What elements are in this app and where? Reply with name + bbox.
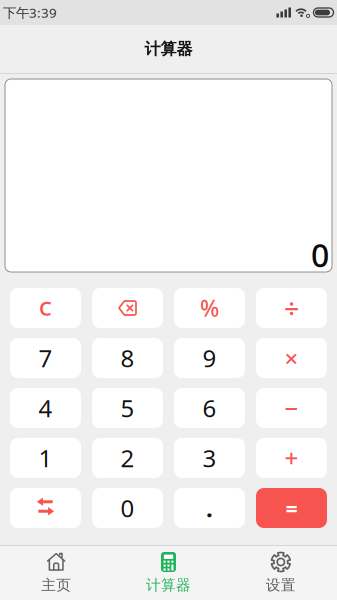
button[interactable]: Backspace xyxy=(92,288,163,328)
staticText: . xyxy=(206,492,213,524)
button[interactable]: . xyxy=(174,488,245,528)
button[interactable]: 5 xyxy=(92,388,163,428)
staticText: ÷ xyxy=(284,290,299,326)
staticText: 6 xyxy=(202,392,216,424)
staticText: 9 xyxy=(202,342,216,374)
staticText: − xyxy=(284,392,298,424)
staticText: 计算器 xyxy=(144,39,192,59)
staticText: + xyxy=(284,442,298,474)
button[interactable]: 8 xyxy=(92,338,163,378)
button[interactable]: = xyxy=(256,488,327,528)
staticText: 1 xyxy=(38,442,52,474)
staticText: 0 xyxy=(120,492,134,524)
staticText: 设置 xyxy=(266,576,296,594)
staticText: = xyxy=(285,494,297,522)
button[interactable]: 主页 xyxy=(0,546,112,600)
button[interactable]: 4 xyxy=(10,388,81,428)
button[interactable]: 3 xyxy=(174,438,245,478)
staticText: 4 xyxy=(38,392,52,424)
button[interactable]: 设置 xyxy=(225,546,337,600)
staticText: 主页 xyxy=(41,576,71,594)
staticText: × xyxy=(284,342,298,374)
button[interactable]: Swap xyxy=(10,488,81,528)
button[interactable]: 2 xyxy=(92,438,163,478)
staticText: 5 xyxy=(120,392,134,424)
button[interactable]: 计算器 xyxy=(112,546,225,600)
button[interactable]: + xyxy=(256,438,327,478)
button[interactable]: − xyxy=(256,388,327,428)
button[interactable]: 9 xyxy=(174,338,245,378)
staticText: 2 xyxy=(120,442,134,474)
staticText: 计算器 xyxy=(146,576,191,594)
button[interactable]: × xyxy=(256,338,327,378)
staticText: C xyxy=(39,295,52,321)
staticText: 7 xyxy=(38,342,52,374)
button[interactable]: 7 xyxy=(10,338,81,378)
staticText: 0 xyxy=(311,233,329,276)
button[interactable]: 1 xyxy=(10,438,81,478)
button[interactable]: ÷ xyxy=(256,288,327,328)
staticText: 下午3:39 xyxy=(3,4,57,21)
button[interactable]: 0 xyxy=(92,488,163,528)
button[interactable]: % xyxy=(174,288,245,328)
staticText: 3 xyxy=(202,442,216,474)
button[interactable]: 6 xyxy=(174,388,245,428)
button[interactable]: C xyxy=(10,288,81,328)
staticText: 8 xyxy=(120,342,134,374)
staticText: % xyxy=(200,293,219,323)
